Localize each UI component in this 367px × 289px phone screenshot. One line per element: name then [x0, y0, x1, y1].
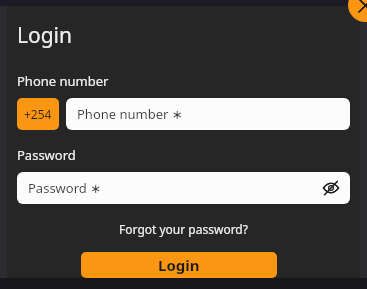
button[interactable]: Password ∗: [17, 172, 350, 204]
staticText: Forgot your password?: [119, 221, 248, 237]
button[interactable]: Phone number ∗: [66, 98, 350, 130]
button[interactable]: +254: [17, 98, 59, 130]
staticText: Phone number: [17, 72, 109, 90]
button[interactable]: Show password: [321, 178, 341, 198]
staticText: +254: [24, 106, 52, 122]
staticText: Phone number ∗: [77, 105, 183, 123]
button[interactable]: Forgot your password?: [17, 218, 350, 240]
staticText: Login: [158, 255, 200, 275]
button[interactable]: Login: [81, 252, 277, 278]
staticText: Password: [17, 146, 76, 164]
staticText: Password ∗: [28, 179, 102, 197]
button[interactable]: Close: [348, 0, 367, 22]
staticText: Login: [17, 21, 73, 50]
